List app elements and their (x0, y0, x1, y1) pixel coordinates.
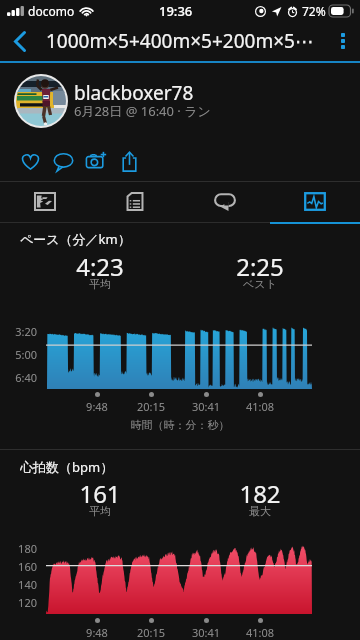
button[interactable]: Add photo (80, 145, 113, 177)
staticText: 心拍数（bpm） (20, 458, 114, 476)
staticText: 5:00 (0, 347, 37, 362)
button[interactable]: Charts (270, 180, 360, 222)
button[interactable]: Details (90, 180, 180, 222)
staticText: ベスト (200, 277, 320, 291)
staticText: 41:08 (235, 399, 285, 414)
staticText: 30:41 (181, 625, 231, 640)
staticText: docomo (28, 3, 75, 19)
staticText: 140 (0, 577, 37, 592)
button[interactable]: Share (113, 145, 146, 177)
staticText: 161 (40, 477, 160, 510)
staticText: 2:25 (200, 250, 320, 283)
staticText: 1000m×5+400m×5+200m×5⋯ (46, 28, 314, 54)
staticText: blackboxer78 (74, 80, 194, 106)
button[interactable]: Back (0, 22, 40, 60)
staticText: ペース（分／km） (20, 230, 131, 248)
staticText: 41:08 (235, 625, 285, 640)
staticText: 最大 (200, 504, 320, 518)
staticText: 72% (302, 3, 326, 19)
staticText: 160 (0, 559, 37, 574)
staticText: 3:20 (0, 324, 37, 339)
staticText: 180 (0, 541, 37, 556)
staticText: 平均 (40, 277, 160, 291)
staticText: 平均 (40, 504, 160, 518)
staticText: 6月28日 @ 16:40 · ラン (74, 102, 211, 120)
staticText: 30:41 (181, 399, 231, 414)
staticText: 9:48 (72, 399, 122, 414)
staticText: 9:48 (72, 625, 122, 640)
staticText: 19:36 (159, 2, 193, 20)
staticText: 時間（時：分：秒） (0, 418, 360, 432)
button[interactable]: Like (14, 145, 47, 177)
staticText: 6:40 (0, 370, 37, 385)
button[interactable]: More options (326, 22, 360, 60)
staticText: 20:15 (126, 625, 176, 640)
staticText: 120 (0, 595, 37, 610)
button[interactable]: Laps (180, 180, 270, 222)
staticText: 4:23 (40, 250, 160, 283)
staticText: 20:15 (126, 399, 176, 414)
button[interactable]: Profile photo (16, 76, 66, 126)
staticText: 182 (200, 477, 320, 510)
button[interactable]: Comment (47, 145, 80, 177)
button[interactable]: Map (0, 180, 90, 222)
